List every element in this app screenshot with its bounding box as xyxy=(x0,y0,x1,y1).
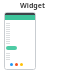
button[interactable] xyxy=(5,58,17,60)
button[interactable] xyxy=(5,28,17,30)
button[interactable] xyxy=(5,36,17,38)
button[interactable] xyxy=(5,22,17,24)
button[interactable] xyxy=(5,34,17,36)
staticText: Widget xyxy=(20,1,45,11)
button[interactable] xyxy=(5,32,17,34)
button[interactable] xyxy=(5,24,17,26)
button[interactable] xyxy=(5,26,17,28)
button[interactable] xyxy=(5,54,17,56)
button[interactable] xyxy=(5,56,17,58)
button[interactable] xyxy=(5,40,17,42)
button[interactable] xyxy=(5,42,17,44)
button[interactable] xyxy=(5,52,17,54)
button[interactable] xyxy=(6,46,17,50)
button[interactable] xyxy=(5,30,17,32)
button[interactable] xyxy=(5,38,17,40)
